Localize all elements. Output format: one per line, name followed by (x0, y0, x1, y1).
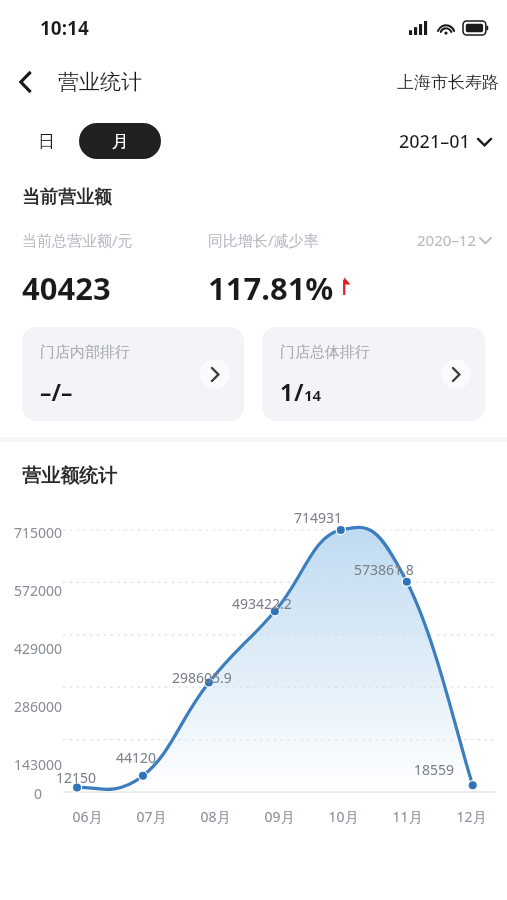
staticText: 18559 (414, 760, 455, 779)
button[interactable]: 2020–12 (417, 230, 507, 250)
staticText: 143000 (0, 755, 62, 774)
staticText: 门店内部排行 (40, 343, 130, 362)
staticText: 09月 (264, 807, 295, 826)
button[interactable]: 2021–01 (391, 123, 507, 160)
staticText: 44120 (116, 748, 157, 767)
staticText: 1 (280, 376, 294, 407)
button[interactable]: 月 (79, 123, 161, 159)
button[interactable]: 上海市长寿路 (397, 66, 507, 99)
button[interactable]: Back (0, 64, 44, 100)
staticText: 715000 (0, 523, 62, 542)
staticText: 0 (34, 784, 43, 803)
staticText: 同比增长/减少率 (208, 230, 319, 250)
staticText: 06月 (72, 807, 103, 826)
staticText: 493422.2 (232, 594, 292, 613)
staticText: 298605.9 (172, 668, 232, 687)
staticText: 12月 (456, 807, 487, 826)
staticText: 12150 (56, 768, 97, 787)
staticText: 营业统计 (58, 69, 142, 95)
staticText: 10:14 (40, 15, 89, 41)
button[interactable]: 门店总体排行 (262, 327, 485, 421)
staticText: 门店总体排行 (280, 343, 370, 362)
staticText: 当前营业额 (22, 186, 112, 209)
staticText: 11月 (392, 807, 423, 826)
staticText: 117.81% (208, 267, 334, 305)
button[interactable]: 日 (28, 125, 65, 158)
staticText: 10月 (328, 807, 359, 826)
staticText: 714931 (294, 508, 343, 527)
staticText: 日 (38, 131, 55, 152)
staticText: 2020–12 (417, 230, 476, 250)
staticText: –/– (40, 376, 73, 407)
button[interactable]: 门店内部排行 (22, 327, 244, 421)
staticText: 573861.8 (354, 560, 414, 579)
staticText: 572000 (0, 581, 62, 600)
staticText: 营业额统计 (22, 464, 117, 488)
staticText: 当前总营业额/元 (22, 230, 133, 250)
staticText: 07月 (136, 807, 167, 826)
staticText: 14 (304, 385, 322, 405)
staticText: 40423 (22, 267, 111, 305)
staticText: 08月 (200, 807, 231, 826)
staticText: / (294, 376, 304, 407)
staticText: 429000 (0, 639, 62, 658)
staticText: 2021–01 (399, 129, 470, 154)
staticText: 月 (112, 131, 129, 152)
staticText: 286000 (0, 697, 62, 716)
